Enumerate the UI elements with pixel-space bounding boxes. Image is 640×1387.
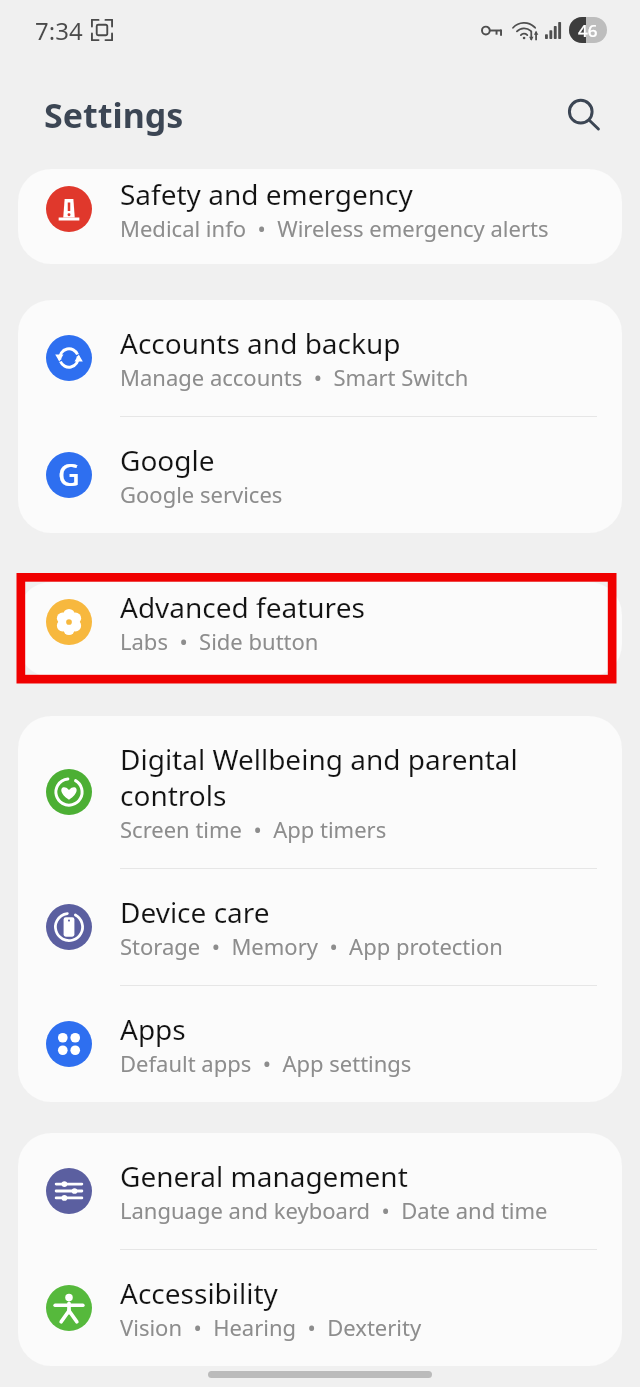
staticText: Google <box>120 441 215 479</box>
staticText: 7:34 <box>35 14 83 47</box>
staticText: Accounts and backup <box>120 324 401 362</box>
staticText: Vision • Hearing • Dexterity <box>120 1312 422 1342</box>
staticText: Google services <box>120 479 283 509</box>
button[interactable]: Advanced features <box>18 582 622 677</box>
staticText: Safety and emergency <box>120 175 413 213</box>
staticText: Settings <box>44 92 184 138</box>
staticText: Default apps • App settings <box>120 1048 412 1078</box>
staticText: Screen time • App timers <box>120 814 387 844</box>
staticText: Advanced features <box>120 588 365 626</box>
staticText: Device care <box>120 893 270 931</box>
button[interactable]: Safety and emergency <box>18 169 622 264</box>
staticText: Digital Wellbeing and parental controls <box>120 740 582 814</box>
button[interactable]: General management <box>18 1133 622 1249</box>
button[interactable]: Accounts and backup <box>18 300 622 416</box>
button[interactable]: Digital Wellbeing and parental controls <box>18 716 622 868</box>
staticText: Language and keyboard • Date and time <box>120 1195 548 1225</box>
staticText: 46 <box>578 19 598 42</box>
staticText: Labs • Side button <box>120 626 319 656</box>
staticText: G <box>58 454 80 495</box>
staticText: General management <box>120 1157 408 1195</box>
staticText: Storage • Memory • App protection <box>120 931 503 961</box>
staticText: Medical info • Wireless emergency alerts <box>120 213 549 243</box>
button[interactable]: Apps <box>18 986 622 1102</box>
staticText: Apps <box>120 1010 186 1048</box>
button[interactable]: Search <box>554 86 614 146</box>
staticText: Manage accounts • Smart Switch <box>120 362 469 392</box>
button[interactable]: G <box>18 417 622 533</box>
button[interactable]: Accessibility <box>18 1250 622 1366</box>
button[interactable]: Device care <box>18 869 622 985</box>
staticText: Accessibility <box>120 1274 278 1312</box>
